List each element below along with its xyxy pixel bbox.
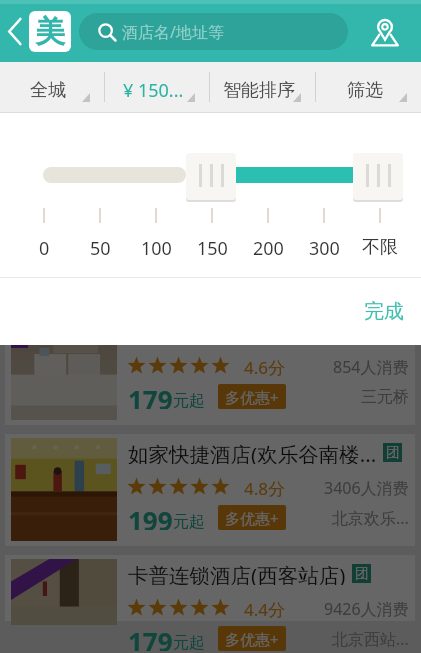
staticText: 北京欢乐...	[332, 507, 409, 529]
staticText: 854人消费	[333, 356, 409, 376]
staticText: 酒店名/地址等	[122, 21, 224, 43]
staticText: 179	[128, 382, 173, 409]
staticText: 150	[197, 236, 228, 261]
staticText: 多优惠+	[225, 629, 279, 649]
button[interactable]: 完成	[364, 299, 404, 324]
staticText: 全城	[30, 79, 66, 102]
staticText: ¥ 150...	[123, 78, 184, 103]
staticText: 200	[253, 236, 284, 261]
button[interactable]: 美	[29, 11, 71, 52]
staticText: 4.8分	[244, 477, 286, 497]
staticText: 筛选	[347, 79, 383, 102]
button[interactable]: 全城	[0, 62, 104, 112]
staticText: 元起	[173, 391, 205, 411]
staticText: 团	[355, 565, 369, 583]
button[interactable]: ¥ 150...	[105, 62, 209, 112]
staticText: 50	[90, 236, 111, 261]
staticText: 多优惠+	[225, 508, 279, 528]
staticText: 300	[309, 236, 340, 261]
staticText: 179	[128, 624, 173, 651]
staticText: 团	[386, 444, 400, 462]
staticText: 100	[141, 236, 172, 261]
staticText: 不限	[362, 236, 398, 259]
staticText: 元起	[173, 633, 205, 653]
button[interactable]: Slider handle	[353, 153, 403, 200]
staticText: 卡普连锁酒店(西客站店)	[128, 561, 346, 585]
staticText: 元起	[173, 512, 205, 532]
button[interactable]: 北京京瑞温泉酒店(三元桥店)	[5, 345, 415, 425]
button[interactable]: Map	[348, 0, 421, 62]
button[interactable]: 如家快捷酒店(欢乐谷南楼...	[5, 434, 415, 546]
staticText: 智能排序	[223, 79, 295, 102]
staticText: 北京西站...	[332, 628, 409, 650]
staticText: 完成	[364, 299, 404, 324]
staticText: 4.6分	[244, 356, 286, 376]
button[interactable]: 筛选	[316, 62, 421, 112]
staticText: 多优惠+	[225, 387, 279, 407]
button[interactable]: Back	[0, 0, 29, 62]
staticText: 0	[39, 236, 50, 261]
button[interactable]: 卡普连锁酒店(西客站店)	[5, 555, 415, 621]
button[interactable]: 智能排序	[210, 62, 315, 112]
button[interactable]: 酒店名/地址等	[79, 13, 348, 50]
staticText: 3406人消费	[324, 477, 409, 497]
button[interactable]: Slider handle	[186, 153, 236, 200]
staticText: 美	[35, 13, 65, 51]
staticText: 三元桥	[361, 387, 409, 407]
staticText: 9426人消费	[324, 598, 409, 618]
staticText: 如家快捷酒店(欢乐谷南楼...	[128, 440, 377, 464]
staticText: 199	[128, 503, 173, 530]
staticText: 4.4分	[244, 598, 286, 618]
